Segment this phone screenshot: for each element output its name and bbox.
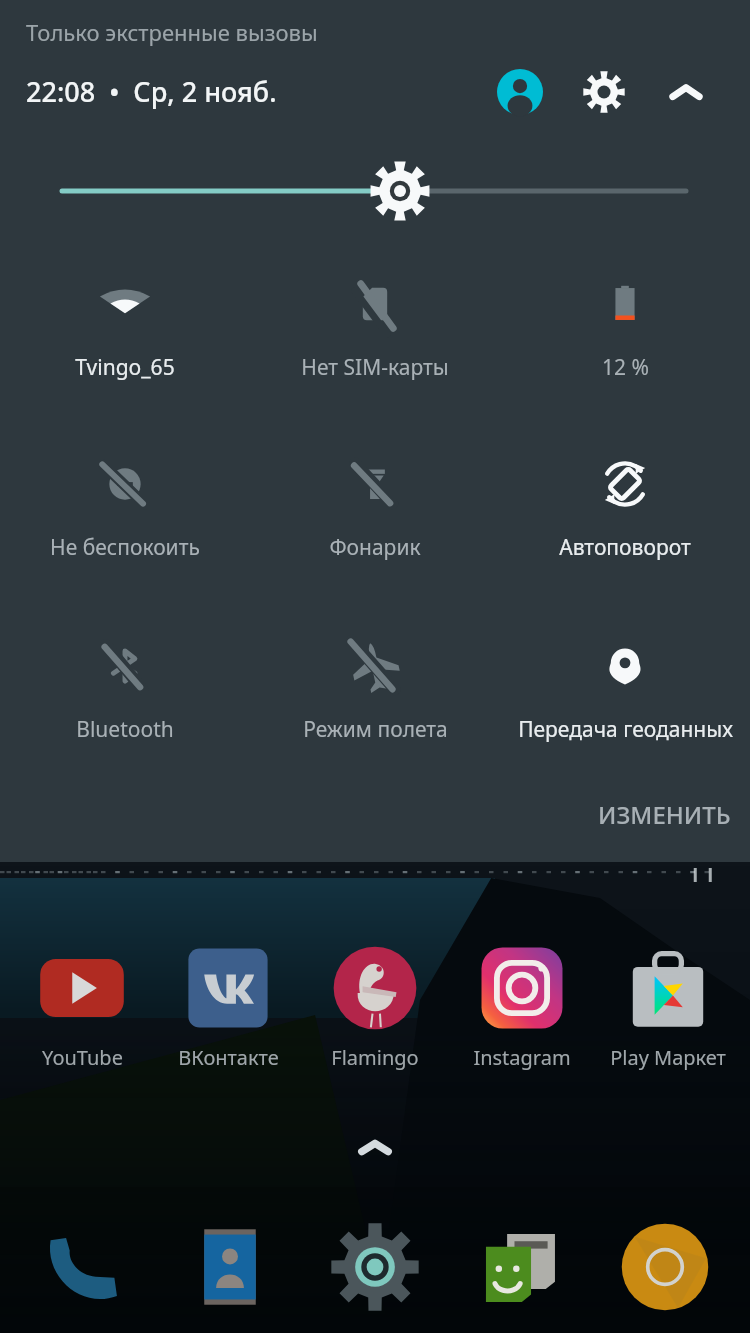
button[interactable]: Не беспокоить [0, 455, 250, 605]
staticText: YouTube [42, 1044, 123, 1071]
button[interactable]: Нет SIM-карты [250, 275, 500, 425]
staticText: Bluetooth [76, 715, 174, 744]
button[interactable]: Tvingo_65 [0, 275, 250, 425]
button[interactable] [0, 158, 750, 224]
staticText: 22:08 • Ср, 2 нояб. [26, 73, 277, 110]
button[interactable]: User account [492, 64, 548, 120]
button[interactable]: Phone [25, 1212, 145, 1322]
staticText: Flamingo [331, 1044, 419, 1071]
button[interactable]: Передача геоданных [500, 637, 750, 787]
button[interactable]: Settings [576, 64, 632, 120]
staticText: Нет SIM-карты [301, 353, 449, 382]
button[interactable]: Автоповорот [500, 455, 750, 605]
staticText: Не беспокоить [50, 533, 200, 562]
button[interactable]: 12 % [500, 275, 750, 425]
button[interactable]: Режим полета [250, 637, 500, 787]
button[interactable]: Play Маркет [603, 944, 733, 1071]
button[interactable]: Instagram [457, 944, 587, 1071]
button[interactable]: Settings [315, 1212, 435, 1322]
staticText: Фонарик [329, 533, 421, 562]
button[interactable]: Chrome [605, 1212, 725, 1322]
staticText: Только экстренные вызовы [26, 17, 318, 47]
staticText: Instagram [473, 1044, 571, 1071]
button[interactable]: ИЗМЕНИТЬ [598, 798, 731, 831]
staticText: Tvingo_65 [75, 353, 175, 382]
button[interactable]: Фонарик [250, 455, 500, 605]
staticText: Передача геоданных [518, 715, 733, 744]
button[interactable]: ВКонтакте [163, 944, 293, 1071]
staticText: Автоповорот [559, 533, 691, 562]
staticText: ВКонтакте [178, 1044, 279, 1071]
staticText: 12 % [602, 353, 649, 382]
button[interactable]: YouTube [17, 944, 147, 1071]
button[interactable]: Bluetooth [0, 637, 250, 787]
button[interactable]: Open app drawer [350, 1128, 400, 1168]
button[interactable]: Flamingo [310, 944, 440, 1071]
button[interactable]: Contacts [170, 1212, 290, 1322]
staticText: Режим полета [303, 715, 448, 744]
button[interactable]: Collapse [658, 64, 714, 120]
button[interactable]: Messages [460, 1212, 580, 1322]
staticText: Play Маркет [610, 1044, 726, 1071]
